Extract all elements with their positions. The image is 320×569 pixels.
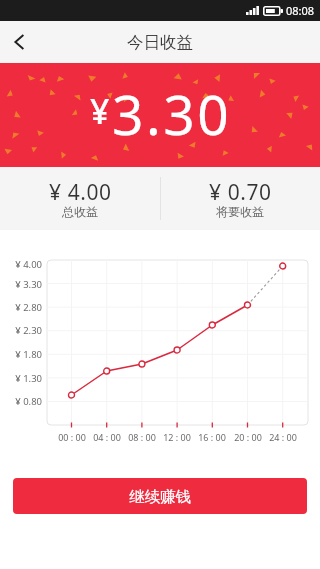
staticText: 04 : 00	[89, 431, 125, 443]
staticText: 3.30	[112, 76, 232, 151]
button[interactable]: ¥ 0.70	[160, 167, 320, 196]
staticText: 总收益	[62, 204, 98, 219]
button[interactable]: 继续赚钱	[13, 478, 307, 514]
staticText: 20 : 00	[230, 431, 266, 443]
staticText: ¥ 4.00	[49, 178, 112, 207]
staticText: 24 : 00	[265, 431, 301, 443]
button[interactable]: ¥ 4.00	[0, 167, 160, 196]
staticText: ¥ 1.30	[6, 372, 42, 385]
staticText: ¥ 3.30	[6, 278, 42, 291]
staticText: ¥ 2.80	[6, 301, 42, 314]
staticText: ¥ 4.00	[6, 258, 42, 271]
staticText: 08 : 00	[124, 431, 160, 443]
staticText: ¥	[90, 88, 110, 134]
staticText: ¥ 0.80	[6, 395, 42, 408]
staticText: ¥ 1.80	[6, 348, 42, 361]
staticText: 08:08	[286, 3, 315, 18]
staticText: 将要收益	[216, 204, 264, 219]
staticText: 16 : 00	[194, 431, 230, 443]
staticText: 12 : 00	[159, 431, 195, 443]
staticText: 今日收益	[127, 32, 193, 53]
staticText: ¥ 0.70	[209, 178, 272, 207]
staticText: 00 : 00	[54, 431, 90, 443]
staticText: ¥ 2.30	[6, 324, 42, 337]
staticText: 继续赚钱	[129, 487, 191, 507]
button[interactable]: Back	[0, 21, 42, 63]
